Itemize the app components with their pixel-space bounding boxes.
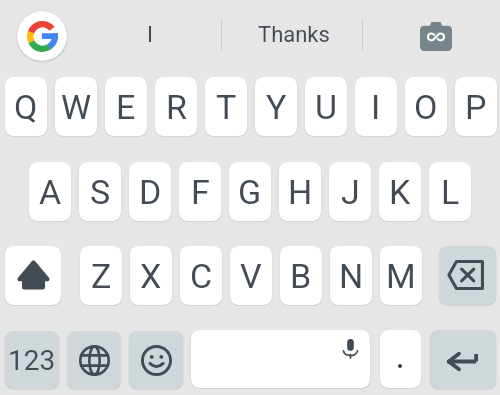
button[interactable]: Z: [80, 246, 122, 305]
staticText: B: [290, 256, 312, 296]
staticText: Thanks: [258, 22, 330, 48]
staticText: N: [339, 256, 364, 296]
staticText: W: [61, 87, 92, 127]
button[interactable]: S: [79, 162, 121, 221]
button[interactable]: M: [380, 246, 422, 305]
button[interactable]: Numbers and symbols: [5, 331, 59, 389]
staticText: R: [166, 87, 187, 127]
button[interactable]: I: [355, 77, 397, 136]
staticText: Z: [91, 256, 112, 296]
button[interactable]: Period: [380, 330, 421, 388]
button[interactable]: N: [330, 246, 372, 305]
button[interactable]: Google Lens: [413, 14, 458, 58]
staticText: F: [191, 172, 210, 212]
button[interactable]: Emoji: [129, 331, 183, 389]
button[interactable]: F: [179, 162, 221, 221]
button[interactable]: Enter: [430, 330, 496, 389]
button[interactable]: A: [29, 162, 71, 221]
staticText: L: [441, 172, 460, 212]
button[interactable]: V: [230, 246, 272, 305]
button[interactable]: Space: [191, 330, 370, 388]
button[interactable]: K: [379, 162, 421, 221]
staticText: T: [216, 87, 237, 127]
button[interactable]: D: [129, 162, 171, 221]
button[interactable]: U: [305, 77, 347, 136]
staticText: J: [341, 172, 360, 212]
button[interactable]: Thanks: [252, 13, 335, 57]
button[interactable]: Backspace: [439, 246, 496, 305]
staticText: V: [240, 256, 262, 296]
button[interactable]: L: [429, 162, 471, 221]
button[interactable]: T: [205, 77, 247, 136]
staticText: K: [389, 172, 411, 212]
staticText: S: [90, 172, 111, 212]
button[interactable]: E: [105, 77, 147, 136]
button[interactable]: H: [279, 162, 321, 221]
button[interactable]: O: [405, 77, 447, 136]
button[interactable]: J: [329, 162, 371, 221]
button[interactable]: X: [130, 246, 172, 305]
button[interactable]: W: [55, 77, 97, 136]
staticText: I: [371, 87, 381, 127]
button[interactable]: B: [280, 246, 322, 305]
staticText: 123: [8, 344, 56, 377]
button[interactable]: C: [180, 246, 222, 305]
staticText: C: [190, 256, 213, 296]
button[interactable]: Shift: [5, 246, 61, 305]
staticText: U: [315, 87, 338, 127]
staticText: O: [414, 87, 438, 127]
button[interactable]: G: [229, 162, 271, 221]
button[interactable]: Y: [255, 77, 297, 136]
button[interactable]: I: [110, 13, 190, 57]
staticText: A: [39, 172, 62, 212]
button[interactable]: Change language: [67, 331, 121, 389]
button[interactable]: R: [155, 77, 197, 136]
staticText: Q: [14, 87, 38, 127]
button[interactable]: P: [455, 77, 497, 136]
staticText: I: [147, 22, 153, 48]
staticText: Y: [266, 87, 287, 127]
button[interactable]: Q: [5, 77, 47, 136]
staticText: H: [288, 172, 313, 212]
staticText: E: [116, 87, 136, 127]
staticText: M: [386, 256, 416, 296]
button[interactable]: Google: [17, 11, 67, 61]
staticText: X: [140, 256, 162, 296]
staticText: G: [238, 172, 262, 212]
staticText: P: [465, 87, 487, 127]
staticText: D: [139, 172, 162, 212]
